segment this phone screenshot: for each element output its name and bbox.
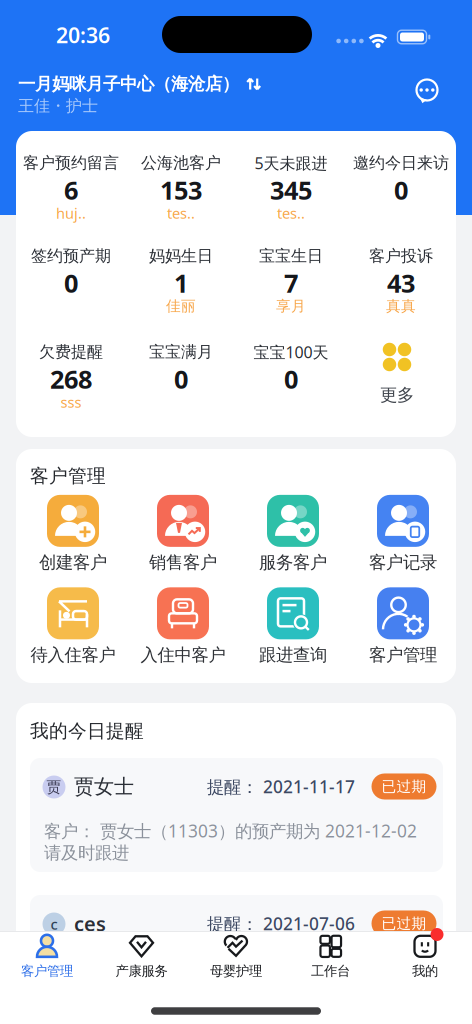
staticText: 0: [284, 362, 298, 396]
button[interactable]: 宝宝100天: [236, 341, 346, 415]
staticText: 客户管理: [369, 644, 437, 666]
button[interactable]: 签约预产期: [16, 245, 126, 319]
button[interactable]: 更多: [342, 341, 452, 415]
button[interactable]: 创建客户: [39, 495, 107, 573]
button[interactable]: 公海池客户: [126, 152, 236, 226]
staticText: sss: [60, 392, 81, 412]
staticText: 真真: [386, 297, 416, 315]
staticText: 0: [64, 266, 78, 300]
staticText: 邀约今日来访: [353, 153, 449, 173]
staticText: 创建客户: [39, 552, 107, 573]
staticText: 0: [174, 362, 188, 396]
staticText: 5天未跟进: [254, 152, 327, 174]
button[interactable]: 欠费提醒: [16, 341, 126, 415]
staticText: 客户管理: [30, 464, 106, 487]
staticText: c: [50, 914, 57, 934]
staticText: 签约预产期: [31, 246, 111, 266]
button[interactable]: 一月妈咪月子中心（海沧店）: [0, 69, 472, 99]
button[interactable]: 服务客户: [259, 495, 327, 573]
staticText: 20:36: [56, 21, 110, 49]
staticText: 妈妈生日: [149, 246, 213, 266]
staticText: 跟进查询: [259, 644, 327, 666]
staticText: 345: [270, 173, 312, 207]
staticText: 提醒： 2021-11-17: [207, 775, 355, 798]
staticText: 已过期: [381, 777, 426, 795]
button[interactable]: c: [30, 895, 443, 1009]
staticText: 一月妈咪月子中心（海沧店）: [18, 73, 239, 95]
staticText: 贾: [46, 778, 61, 796]
staticText: 已过期: [381, 914, 426, 932]
button[interactable]: 客户预约留言: [16, 152, 126, 226]
button[interactable]: 客户记录: [369, 495, 437, 573]
button[interactable]: 妈妈生日: [126, 245, 236, 319]
button[interactable]: 入住中客户: [140, 587, 225, 666]
button[interactable]: 客户管理: [369, 587, 437, 666]
staticText: 1: [174, 266, 188, 300]
staticText: 更多: [380, 384, 414, 406]
staticText: 贾女士: [74, 774, 134, 799]
staticText: 欠费提醒: [39, 342, 103, 362]
staticText: ces: [74, 910, 106, 937]
button[interactable]: 宝宝生日: [236, 245, 346, 319]
button[interactable]: 销售客户: [149, 495, 217, 573]
staticText: huj..: [56, 203, 86, 223]
button[interactable]: 贾: [30, 758, 443, 872]
staticText: 6: [64, 173, 78, 207]
button[interactable]: 我的: [379, 933, 471, 979]
button[interactable]: 邀约今日来访: [346, 152, 456, 226]
staticText: tes..: [277, 203, 305, 223]
staticText: 客户预约留言: [23, 153, 119, 173]
staticText: 我的今日提醒: [30, 719, 144, 742]
staticText: 客户： ces（11012）的预产期为 2021-07-08 请及时跟进: [44, 956, 431, 1001]
staticText: 客户： 贾女士（11303）的预产期为 2021-12-02 请及时跟进: [44, 819, 417, 864]
staticText: 服务客户: [259, 552, 327, 573]
button[interactable]: 客户管理: [1, 933, 93, 979]
staticText: 公海池客户: [141, 153, 221, 173]
staticText: 待入住客户: [30, 644, 115, 666]
button[interactable]: 跟进查询: [259, 587, 327, 666]
staticText: 宝宝100天: [253, 341, 328, 363]
button[interactable]: 产康服务: [95, 933, 187, 979]
staticText: 入住中客户: [140, 644, 225, 666]
staticText: 268: [50, 362, 92, 396]
staticText: 客户管理: [21, 963, 73, 979]
staticText: 享月: [276, 297, 306, 315]
staticText: 宝宝生日: [259, 246, 323, 266]
button[interactable]: 宝宝满月: [126, 341, 236, 415]
staticText: 产康服务: [115, 963, 167, 979]
staticText: 客户记录: [369, 552, 437, 573]
button[interactable]: 5天未跟进: [236, 152, 346, 226]
button[interactable]: 待入住客户: [30, 587, 115, 666]
staticText: 我的: [412, 963, 438, 979]
button[interactable]: 母婴护理: [190, 933, 282, 979]
staticText: 7: [284, 266, 298, 300]
staticText: 0: [394, 173, 408, 207]
staticText: tes..: [167, 203, 195, 223]
button[interactable]: 消息: [412, 76, 442, 106]
staticText: 销售客户: [149, 552, 217, 573]
staticText: 提醒： 2021-07-06: [207, 912, 355, 935]
staticText: 佳丽: [166, 297, 196, 315]
staticText: 43: [387, 266, 415, 300]
button[interactable]: 客户投诉: [346, 245, 456, 319]
staticText: 母婴护理: [210, 963, 262, 979]
staticText: 153: [160, 173, 202, 207]
staticText: 工作台: [311, 963, 350, 979]
staticText: 客户投诉: [369, 246, 433, 266]
staticText: 宝宝满月: [149, 342, 213, 362]
button[interactable]: 工作台: [284, 933, 376, 979]
staticText: 王佳・护士: [18, 96, 98, 116]
